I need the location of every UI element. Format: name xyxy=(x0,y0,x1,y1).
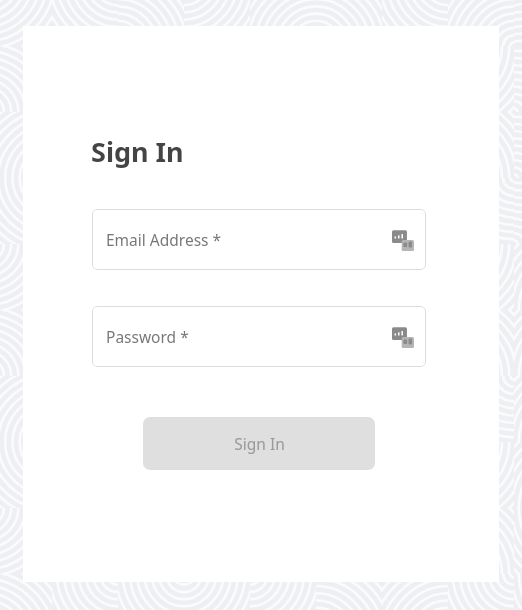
other: Email Address * image placeholder xyxy=(391,228,415,252)
button[interactable]: Sign In xyxy=(143,417,375,470)
button[interactable]: Email Address * xyxy=(92,209,426,270)
staticText: Email Address * xyxy=(106,229,222,250)
other: Password * image placeholder xyxy=(391,325,415,349)
staticText: Sign In xyxy=(91,133,184,170)
staticText: Sign In xyxy=(234,433,285,454)
staticText: Password * xyxy=(106,326,189,347)
button[interactable]: Password * xyxy=(92,306,426,367)
